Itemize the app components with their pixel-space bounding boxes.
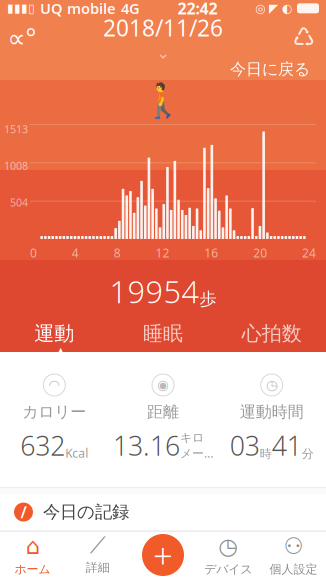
button[interactable]: 今日に戻る [224, 56, 316, 82]
staticText: / [20, 501, 26, 523]
staticText: 心拍数 [242, 321, 302, 346]
button[interactable]: ◷ [217, 360, 326, 477]
staticText: 12 [155, 245, 169, 261]
staticText: 運動 [34, 321, 74, 346]
staticText: 睡眠 [143, 321, 183, 346]
staticText: 4G [121, 0, 140, 18]
staticText: 20 [253, 245, 267, 261]
staticText: ⌄ [156, 44, 169, 62]
staticText: 歩 [199, 288, 216, 310]
staticText: 0 [30, 245, 37, 261]
button[interactable]: ⟋ [65, 531, 130, 579]
staticText: 詳細 [86, 560, 110, 575]
staticText: カロリー [22, 402, 86, 422]
staticText: ホーム [15, 562, 51, 577]
staticText: ∝° [7, 20, 36, 54]
staticText: ⚇ [283, 533, 303, 559]
button[interactable]: 心拍数 [217, 314, 326, 354]
button[interactable]: ◠ [0, 360, 109, 477]
staticText: 2018/11/26 [103, 13, 223, 43]
staticText: 運動時間 [240, 402, 304, 422]
staticText: ⟋ [90, 535, 106, 557]
staticText: ◉ [157, 377, 169, 392]
staticText: ◠ [48, 377, 60, 392]
staticText: ▲ [54, 343, 67, 363]
staticText: 24 [302, 245, 316, 261]
button[interactable]: 追加 [142, 534, 184, 576]
staticText: 今日に戻る [230, 59, 310, 79]
button[interactable]: ◉ [109, 360, 217, 477]
staticText: 504 [10, 195, 28, 209]
staticText: 今日の記録 [43, 501, 129, 523]
button[interactable]: 共有 [0, 18, 44, 56]
staticText: Kcal [65, 445, 88, 461]
staticText: 🚶 [142, 82, 184, 120]
button[interactable]: 同期 [282, 18, 326, 56]
staticText: ◷ [266, 377, 278, 392]
button[interactable]: / [0, 494, 326, 530]
staticText: 時 [260, 446, 272, 461]
staticText: 8 [114, 245, 121, 261]
staticText: 分 [302, 446, 314, 461]
button[interactable]: 運動 [0, 314, 109, 354]
staticText: + [153, 532, 173, 578]
staticText: キロメー… [180, 430, 213, 461]
staticText: 1008 [4, 159, 28, 173]
staticText: 13.16 [113, 428, 180, 463]
staticText: 632 [20, 428, 65, 463]
staticText: ▮▮▮▯ [7, 1, 35, 15]
staticText: 22:42 [177, 0, 217, 19]
button[interactable]: ◷ [196, 531, 261, 579]
staticText: UQ mobile [40, 0, 116, 18]
staticText: 03 [230, 428, 260, 463]
staticText: 個人設定 [269, 562, 317, 577]
staticText: ◷ [218, 533, 238, 559]
button[interactable]: ⌂ [0, 531, 65, 579]
staticText: 距離 [147, 402, 179, 422]
button[interactable]: ⚇ [261, 531, 326, 579]
staticText: 41 [272, 428, 302, 463]
staticText: 16 [204, 245, 218, 261]
button[interactable]: 睡眠 [109, 314, 217, 354]
staticText: 19954 [109, 271, 199, 312]
staticText: ◎ ◤ ◐ [255, 1, 292, 15]
staticText: ♺ [292, 23, 315, 52]
staticText: デバイス [204, 562, 252, 577]
staticText: 1513 [4, 122, 28, 136]
staticText: ⌂ [26, 533, 40, 559]
staticText: 4 [72, 245, 79, 261]
